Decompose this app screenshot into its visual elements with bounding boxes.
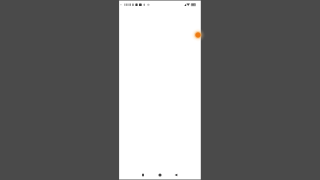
button[interactable]: Add bbox=[191, 28, 205, 42]
button[interactable]: Home bbox=[153, 168, 167, 180]
button[interactable]: Back bbox=[169, 168, 183, 180]
button[interactable]: Recents bbox=[136, 168, 150, 180]
